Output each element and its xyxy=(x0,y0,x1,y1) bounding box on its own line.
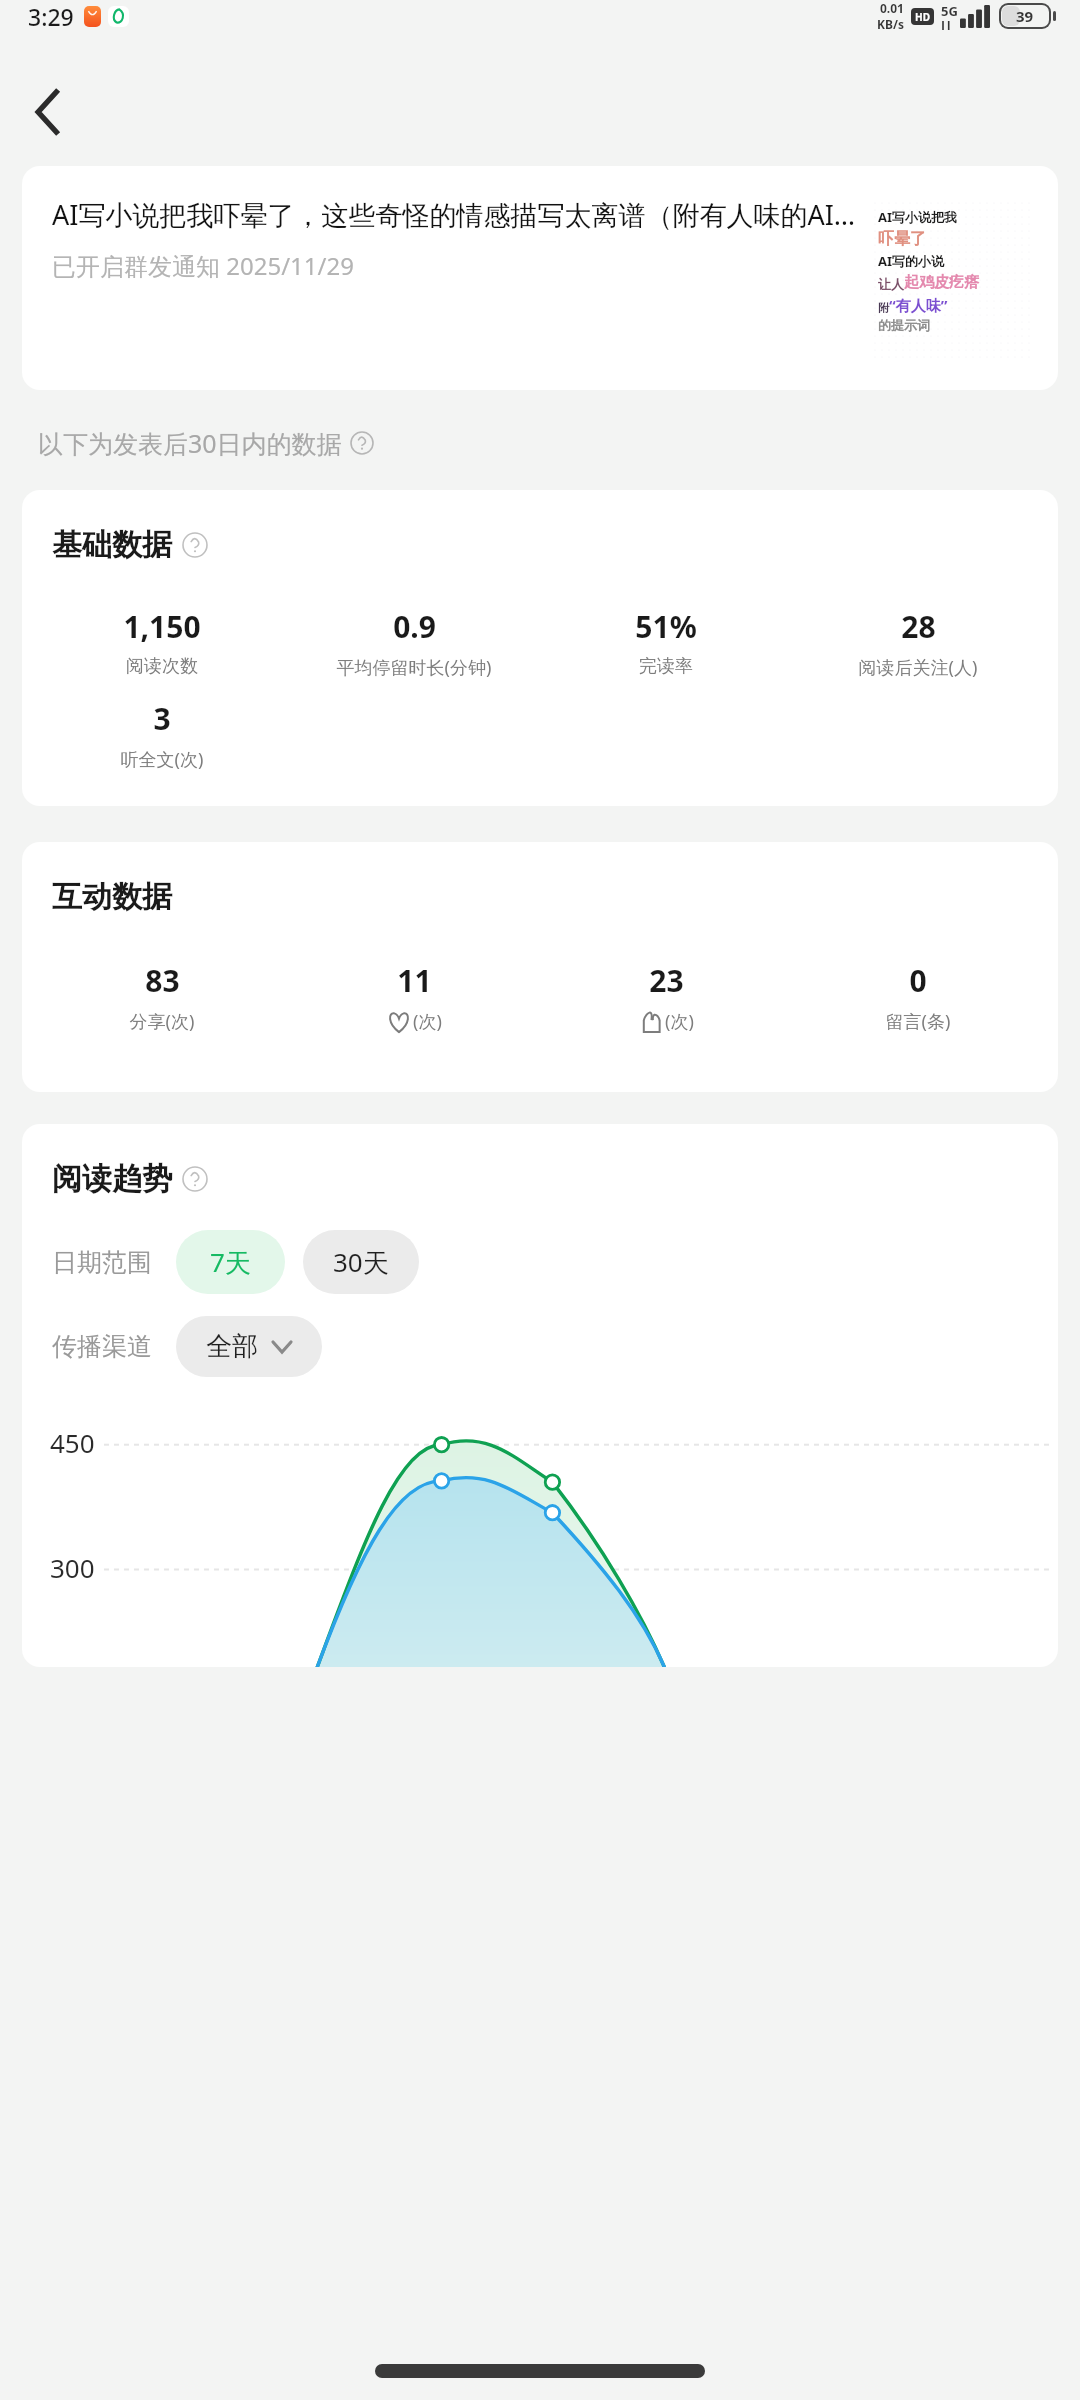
staticText: 30天 xyxy=(333,1244,389,1280)
staticText: 阅读后关注(人) xyxy=(792,655,1044,680)
button[interactable]: 全部 xyxy=(176,1316,322,1377)
staticText: AI写小说把我吓晕了，这些奇怪的情感描写太离谱（附有人味的AI… xyxy=(52,196,856,233)
staticText: 留言(条) xyxy=(792,1009,1044,1034)
staticText: 平均停留时长(分钟) xyxy=(288,655,540,680)
staticText: 互动数据 xyxy=(52,878,172,916)
staticText: 3:29 xyxy=(28,1,74,32)
button[interactable]: 0.9 xyxy=(288,606,540,680)
staticText: 5G xyxy=(941,2,958,20)
staticText: 已开启群发通知 2025/11/29 xyxy=(52,249,354,282)
staticText: 0.01 xyxy=(880,0,904,16)
staticText: 11 xyxy=(397,960,432,1001)
button[interactable]: 51% xyxy=(540,606,792,678)
staticText: (次) xyxy=(413,1009,442,1034)
button[interactable]: 1,150 xyxy=(36,606,288,678)
staticText: 全部 xyxy=(206,1330,258,1363)
staticText: KB/s xyxy=(877,16,904,32)
staticText: 分享(次) xyxy=(36,1009,288,1034)
staticText: (次) xyxy=(665,1009,694,1034)
staticText: 39 xyxy=(1016,6,1034,26)
button[interactable]: Back xyxy=(0,72,96,152)
staticText: AI写的小说 xyxy=(878,252,945,270)
staticText: 阅读次数 xyxy=(36,655,288,678)
staticText: 450 xyxy=(50,1425,95,1460)
staticText: 28 xyxy=(901,606,936,647)
staticText: 1,150 xyxy=(123,606,201,647)
staticText: 的提示词 xyxy=(878,317,930,333)
staticText: 完读率 xyxy=(540,655,792,678)
staticText: 以下为发表后30日内的数据 xyxy=(38,426,342,460)
staticText: 0 xyxy=(909,960,927,1001)
button[interactable]: 30天 xyxy=(303,1230,419,1294)
staticText: 7天 xyxy=(210,1244,251,1280)
button[interactable]: 83 xyxy=(36,960,288,1034)
staticText: 83 xyxy=(145,960,180,1001)
staticText: 23 xyxy=(649,960,684,1001)
staticText: “有人味” xyxy=(889,295,948,315)
staticText: HD xyxy=(915,10,930,24)
staticText: 日期范围 xyxy=(52,1247,152,1278)
staticText: 300 xyxy=(50,1550,95,1585)
button[interactable]: 11 xyxy=(288,960,540,1034)
staticText: 基础数据 xyxy=(52,526,172,564)
staticText: 听全文(次) xyxy=(36,747,288,772)
staticText: 附 xyxy=(878,301,889,315)
button[interactable]: 28 xyxy=(792,606,1044,680)
staticText: 起鸡皮疙瘩 xyxy=(904,273,979,292)
button[interactable]: 0 xyxy=(792,960,1044,1034)
staticText: 0.9 xyxy=(393,606,436,647)
staticText: 吓晕了 xyxy=(878,229,926,249)
button[interactable]: 23 xyxy=(540,960,792,1034)
staticText: 让人 xyxy=(878,276,904,292)
staticText: 传播渠道 xyxy=(52,1331,152,1362)
staticText: 阅读趋势 xyxy=(52,1160,172,1198)
staticText: 51% xyxy=(635,606,697,647)
button[interactable]: AI写小说把我吓晕了，这些奇怪的情感描写太离谱（附有人味的AI… xyxy=(22,166,1058,390)
button[interactable]: 3 xyxy=(36,698,288,772)
button[interactable]: 7天 xyxy=(176,1230,285,1294)
staticText: 3 xyxy=(153,698,171,739)
staticText: AI写小说把我 xyxy=(878,208,958,226)
